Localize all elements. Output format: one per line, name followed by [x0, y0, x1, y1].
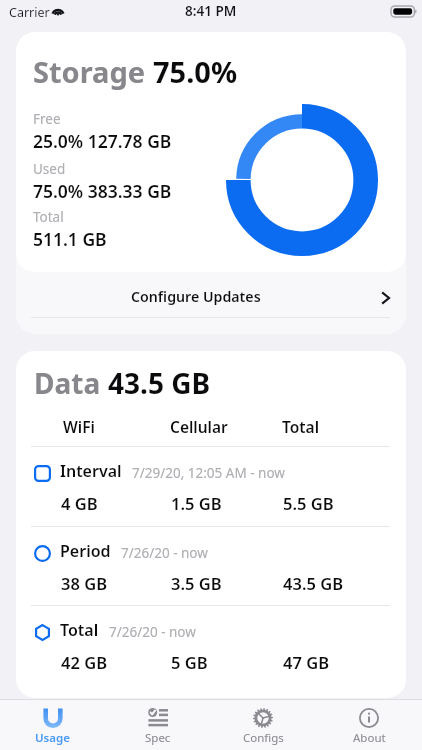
staticText: Storage	[33, 52, 153, 91]
staticText: 5.5 GB	[283, 492, 334, 514]
other: Spec	[148, 708, 168, 728]
staticText: Used	[33, 160, 66, 178]
staticText: Period	[60, 540, 111, 562]
staticText: 43.5 GB	[283, 572, 344, 594]
staticText: 7/26/20 - now	[109, 623, 196, 641]
button[interactable]: Total	[16, 605, 406, 684]
staticText: 75.0% 383.33 GB	[33, 179, 172, 203]
staticText: 47 GB	[283, 651, 330, 673]
staticText: 42 GB	[61, 651, 108, 673]
button[interactable]: About	[316, 700, 422, 750]
staticText: 43.5 GB	[108, 364, 211, 402]
staticText: 5 GB	[171, 651, 208, 673]
other: About	[359, 708, 379, 728]
staticText: Cellular	[170, 416, 228, 437]
staticText: Data	[34, 364, 108, 402]
staticText: 38 GB	[61, 572, 108, 594]
staticText: Total	[33, 208, 64, 226]
staticText: Total	[60, 619, 99, 641]
button[interactable]: Period	[16, 526, 406, 605]
staticText: About	[353, 730, 386, 746]
staticText: Interval	[60, 460, 122, 482]
other: Configs	[253, 708, 273, 728]
button[interactable]: Interval	[16, 446, 406, 525]
staticText: 7/26/20 - now	[121, 544, 208, 562]
staticText: 25.0% 127.78 GB	[33, 129, 172, 153]
button[interactable]: Spec	[105, 700, 210, 750]
staticText: 8:41 PM	[185, 2, 237, 20]
other: Usage	[43, 708, 63, 728]
staticText: Configs	[243, 730, 284, 746]
staticText: Spec	[145, 730, 171, 746]
staticText: 511.1 GB	[33, 227, 107, 251]
staticText: 75.0%	[153, 52, 238, 91]
staticText: 7/29/20, 12:05 AM - now	[132, 464, 285, 482]
staticText: 4 GB	[61, 492, 98, 514]
button[interactable]: Usage	[0, 700, 105, 750]
staticText: WiFi	[63, 416, 95, 437]
staticText: Configure Updates	[131, 287, 261, 306]
staticText: Free	[33, 110, 61, 128]
button[interactable]: Configs	[210, 700, 316, 750]
button[interactable]: Configure Updates	[16, 272, 406, 330]
staticText: Carrier	[9, 4, 50, 21]
staticText: Usage	[35, 730, 70, 746]
staticText: 1.5 GB	[171, 492, 222, 514]
staticText: 3.5 GB	[171, 572, 222, 594]
staticText: Total	[282, 416, 320, 437]
